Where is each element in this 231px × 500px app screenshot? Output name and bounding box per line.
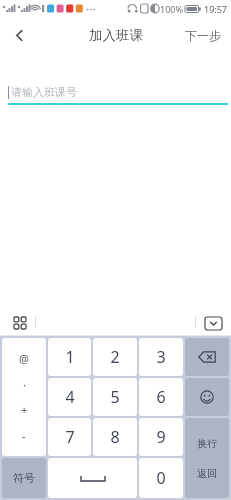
staticText: 7 [65, 426, 75, 448]
staticText: 符号 [13, 471, 35, 485]
button[interactable]: 2 [93, 338, 137, 376]
button[interactable]: 0 [139, 458, 183, 498]
staticText: 返回 [197, 467, 217, 480]
button[interactable]: 4 [48, 378, 91, 416]
staticText: 3 [156, 346, 166, 368]
staticText: 5 [110, 386, 120, 408]
staticText: 加入班课 [89, 27, 143, 44]
staticText: @ [19, 351, 29, 366]
button[interactable]: Keyboard layouts [9, 312, 31, 334]
button[interactable]: 8 [93, 418, 137, 456]
staticText: - [22, 428, 26, 443]
staticText: 100% [160, 3, 183, 15]
button[interactable]: Emoji [185, 378, 229, 416]
staticText: 19:57 [204, 3, 228, 15]
button[interactable]: 3 [139, 338, 183, 376]
staticText: · [23, 377, 26, 392]
staticText: 2 [110, 346, 120, 368]
staticText: 6 [156, 386, 166, 408]
button[interactable]: 1 [48, 338, 91, 376]
button[interactable]: 5 [93, 378, 137, 416]
button[interactable]: @ [2, 338, 46, 456]
staticText: 0 [156, 467, 166, 489]
staticText: 下一步 [185, 28, 221, 43]
staticText: 1 [65, 346, 75, 368]
button[interactable]: 6 [139, 378, 183, 416]
button[interactable]: 9 [139, 418, 183, 456]
button[interactable]: 7 [48, 418, 91, 456]
staticText: 4 [65, 386, 75, 408]
staticText: 8 [110, 426, 120, 448]
button[interactable]: Back [0, 16, 38, 54]
button[interactable]: 符号 [2, 458, 46, 498]
button[interactable]: Backspace [185, 338, 229, 376]
button[interactable]: 下一步 [175, 19, 231, 52]
button[interactable]: 请输入班课号 [8, 82, 228, 102]
staticText: + [21, 402, 28, 417]
staticText: 9 [156, 426, 166, 448]
staticText: 换行 [197, 437, 217, 450]
button[interactable]: Space [48, 458, 137, 498]
staticText: 请输入班课号 [11, 85, 77, 99]
button[interactable]: Hide keyboard [202, 312, 224, 334]
button[interactable]: 换行 [185, 418, 229, 498]
